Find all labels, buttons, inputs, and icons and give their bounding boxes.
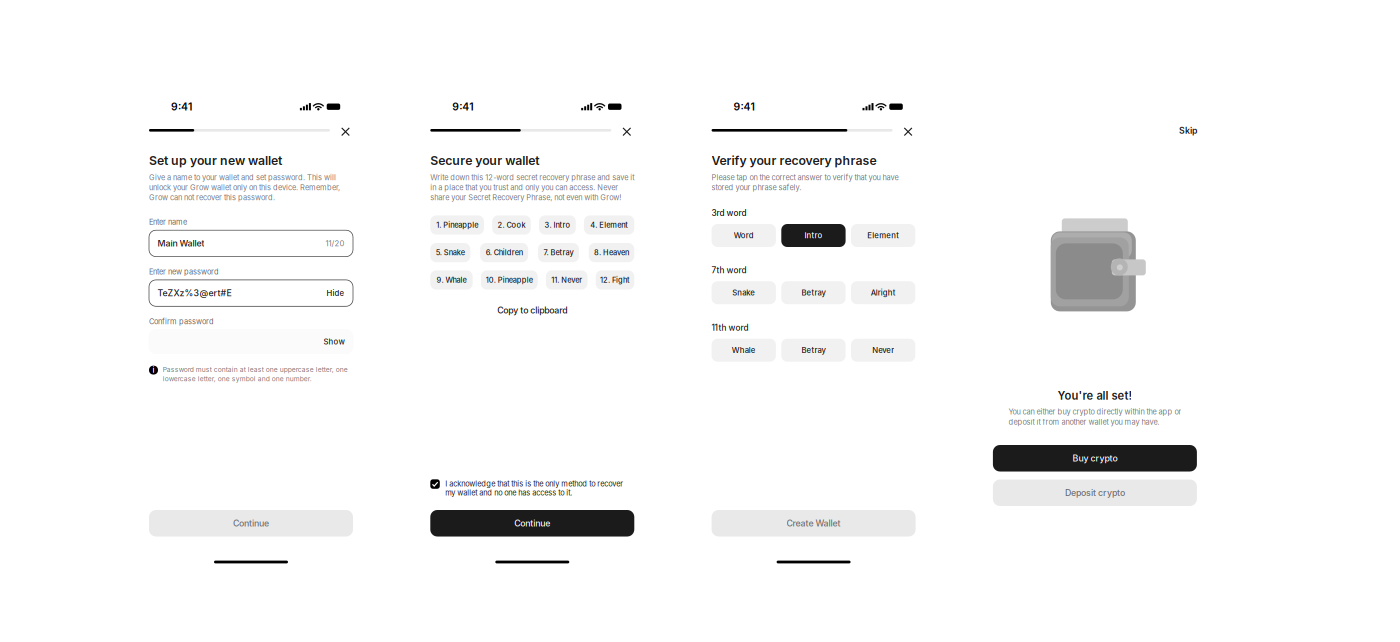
- staticText: 12. Fight: [600, 275, 630, 284]
- staticText: Whale: [732, 345, 756, 355]
- staticText: You can either buy crypto directly withi…: [1008, 407, 1181, 427]
- button[interactable]: Betray: [781, 281, 846, 304]
- staticText: Alright: [871, 288, 896, 297]
- staticText: Deposit crypto: [1065, 487, 1125, 498]
- staticText: Please tap on the correct answer to veri…: [712, 173, 899, 192]
- button[interactable]: Snake: [712, 281, 776, 304]
- button[interactable]: Close: [901, 124, 916, 139]
- button[interactable]: Word: [712, 224, 776, 247]
- staticText: 11/20: [326, 239, 345, 248]
- staticText: I acknowledge that this is the only meth…: [445, 479, 623, 497]
- staticText: 1. Pineapple: [436, 220, 478, 229]
- staticText: 11th word: [712, 323, 749, 333]
- button[interactable]: Whale: [712, 339, 776, 362]
- staticText: Copy to clipboard: [497, 305, 567, 316]
- button[interactable]: Create Wallet: [712, 510, 916, 536]
- staticText: 8. Heaven: [594, 248, 629, 257]
- staticText: Set up your new wallet: [149, 153, 282, 168]
- staticText: Hide: [327, 288, 345, 298]
- staticText: 7. Betray: [543, 248, 573, 257]
- staticText: Give a name to your wallet and set passw…: [149, 173, 340, 202]
- button[interactable]: Skip: [1179, 125, 1197, 135]
- staticText: Skip: [1179, 125, 1197, 136]
- staticText: 9:41: [171, 100, 192, 113]
- staticText: 6. Children: [486, 248, 523, 257]
- staticText: Write down this 12-word secret recovery …: [430, 173, 634, 202]
- staticText: Show: [324, 337, 345, 346]
- staticText: Password must contain at least one upper…: [163, 366, 348, 383]
- button[interactable]: Buy crypto: [993, 445, 1197, 471]
- staticText: Snake: [732, 288, 755, 297]
- staticText: Intro: [804, 231, 822, 240]
- staticText: 4. Element: [590, 220, 628, 229]
- staticText: 3. Intro: [544, 220, 570, 229]
- button[interactable]: Acknowledge recovery phrase: [430, 479, 440, 489]
- button[interactable]: Copy to clipboard: [430, 305, 634, 316]
- staticText: Never: [872, 345, 894, 355]
- staticText: i: [152, 366, 154, 375]
- staticText: Betray: [801, 345, 825, 355]
- button[interactable]: Alright: [851, 281, 915, 304]
- staticText: 10. Pineapple: [486, 275, 533, 284]
- staticText: Main Wallet: [157, 238, 204, 249]
- staticText: 5. Snake: [436, 248, 465, 257]
- staticText: You're all set!: [1057, 389, 1132, 403]
- button[interactable]: Element: [851, 224, 915, 247]
- button[interactable]: Never: [851, 339, 915, 362]
- staticText: Create Wallet: [787, 518, 841, 528]
- staticText: 3rd word: [712, 208, 747, 218]
- button[interactable]: Deposit crypto: [993, 479, 1197, 506]
- staticText: Buy crypto: [1072, 453, 1117, 463]
- button[interactable]: Intro: [781, 224, 846, 247]
- staticText: Continue: [514, 518, 550, 528]
- staticText: Confirm password: [149, 317, 214, 326]
- staticText: 11. Never: [551, 275, 582, 284]
- staticText: Element: [867, 231, 899, 240]
- staticText: Continue: [233, 518, 269, 528]
- staticText: 9. Whale: [436, 275, 466, 284]
- button[interactable]: Continue: [149, 510, 353, 536]
- staticText: 9:41: [452, 100, 473, 113]
- staticText: 9:41: [734, 100, 755, 113]
- button[interactable]: Close: [338, 124, 353, 139]
- staticText: Enter name: [149, 218, 187, 227]
- staticText: 7th word: [712, 265, 747, 275]
- staticText: Enter new password: [149, 267, 219, 276]
- staticText: Verify your recovery phrase: [712, 153, 877, 168]
- staticText: 2. Cook: [497, 220, 525, 229]
- button[interactable]: Betray: [781, 339, 846, 362]
- button[interactable]: Close: [619, 124, 634, 139]
- staticText: TeZXz%3@ert#E: [157, 288, 231, 298]
- staticText: Word: [734, 231, 754, 240]
- staticText: Secure your wallet: [430, 153, 539, 168]
- staticText: Betray: [801, 288, 825, 297]
- button[interactable]: Continue: [430, 510, 634, 536]
